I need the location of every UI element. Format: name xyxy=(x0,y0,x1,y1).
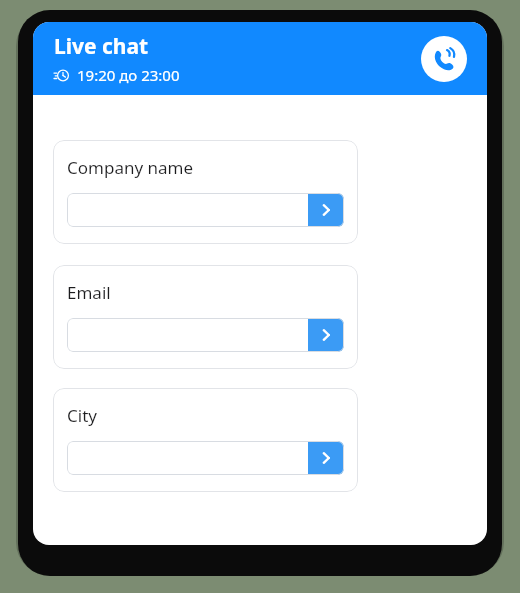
button[interactable]: Email xyxy=(53,265,358,369)
button[interactable]: Call xyxy=(421,36,467,82)
button[interactable]: Submit xyxy=(308,318,344,352)
staticText: Company name xyxy=(67,156,194,179)
staticText: Live chat xyxy=(54,32,149,61)
staticText: Email xyxy=(67,281,111,304)
button[interactable]: Submit xyxy=(308,193,344,227)
staticText: 19:20 до 23:00 xyxy=(77,65,180,85)
staticText: City xyxy=(67,404,97,427)
button[interactable]: City xyxy=(53,388,358,492)
button[interactable]: Company name xyxy=(53,140,358,244)
button[interactable]: Submit xyxy=(308,441,344,475)
